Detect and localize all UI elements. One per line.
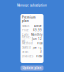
staticText: Monthly	[31, 33, 42, 36]
button[interactable]: Status	[20, 24, 43, 28]
staticText: Renews	[22, 35, 31, 42]
staticText: Manage subscription	[17, 4, 47, 7]
staticText: Price	[22, 29, 29, 32]
button[interactable]: Method	[20, 41, 43, 45]
staticText: Jun 12	[32, 37, 42, 41]
staticText: $9.99	[33, 29, 42, 32]
staticText: Visa	[37, 41, 42, 45]
button[interactable]: Renews	[20, 37, 43, 41]
staticText: Started	[22, 46, 31, 49]
button[interactable]: Seats	[20, 50, 43, 54]
staticText: Active	[34, 24, 42, 28]
staticText: Seats	[22, 50, 28, 54]
button[interactable]: Price	[20, 28, 43, 32]
staticText: Invoices	[22, 54, 33, 58]
button[interactable]: Invoices	[20, 54, 43, 58]
button[interactable]: Started	[20, 45, 43, 50]
staticText: Jan 12	[33, 46, 42, 49]
staticText: 3	[40, 50, 42, 54]
staticText: Method	[22, 41, 33, 45]
staticText: View	[36, 54, 42, 58]
staticText: Cycle	[22, 33, 29, 36]
staticText: Update plan	[22, 66, 41, 70]
button[interactable]: Update plan	[20, 65, 43, 70]
staticText: Status	[22, 24, 29, 28]
staticText: Premium plan	[22, 16, 36, 23]
button[interactable]: Cycle	[20, 32, 43, 37]
